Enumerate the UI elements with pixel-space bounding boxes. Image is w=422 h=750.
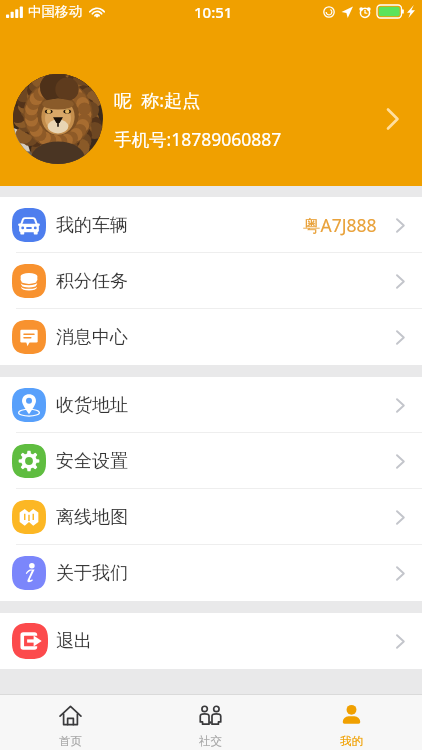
button[interactable]: 首页 (0, 695, 140, 750)
staticText: 离线地图 (56, 506, 128, 529)
staticText: 我的 (340, 734, 363, 748)
button[interactable]: 消息中心 (0, 309, 422, 365)
staticText: 关于我们 (56, 562, 128, 585)
staticText: 中国移动 (28, 3, 82, 20)
staticText: 积分任务 (56, 270, 128, 293)
button[interactable]: 安全设置 (0, 433, 422, 489)
staticText: 粤A7J888 (303, 213, 377, 237)
staticText: 消息中心 (56, 326, 128, 349)
button[interactable]: 退出 (0, 613, 422, 669)
button[interactable]: 收货地址 (0, 377, 422, 433)
staticText: 收货地址 (56, 394, 128, 417)
button[interactable]: 离线地图 (0, 489, 422, 545)
other: Edit profile (381, 107, 405, 131)
staticText: 首页 (59, 734, 82, 748)
button[interactable]: 我的 (281, 695, 422, 750)
staticText: 10:51 (194, 2, 233, 22)
button[interactable]: 社交 (140, 695, 281, 750)
button[interactable]: 呢 称:起点 (0, 74, 422, 164)
button[interactable]: 我的车辆 (0, 197, 422, 253)
staticText: 手机号:18789060887 (114, 127, 282, 151)
staticText: 退出 (56, 630, 92, 653)
staticText: 我的车辆 (56, 214, 128, 237)
staticText: 呢 称:起点 (114, 88, 201, 113)
staticText: 安全设置 (56, 450, 128, 473)
staticText: 社交 (199, 734, 222, 748)
button[interactable]: 积分任务 (0, 253, 422, 309)
button[interactable]: 关于我们 (0, 545, 422, 601)
